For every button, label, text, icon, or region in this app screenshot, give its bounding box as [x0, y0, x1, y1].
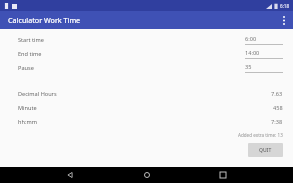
button[interactable]: Home — [137, 167, 157, 183]
staticText: 458 — [273, 104, 283, 112]
button[interactable]: Start time — [0, 33, 293, 47]
button[interactable]: Decimal Hours — [0, 87, 293, 101]
staticText: Minute — [18, 104, 37, 112]
staticText: 7.63 — [271, 90, 283, 98]
staticText: Start time — [18, 36, 44, 44]
staticText: 7:38 — [271, 118, 283, 126]
button[interactable]: hh:mm — [0, 115, 293, 129]
staticText: Pause — [18, 64, 34, 72]
staticText: End time — [18, 50, 42, 58]
button[interactable]: Minute — [0, 101, 293, 115]
button[interactable]: Recent apps — [213, 167, 233, 183]
button[interactable]: Back — [60, 167, 80, 183]
staticText: Added extra time: 13 — [238, 132, 283, 138]
staticText: 6:18 — [280, 3, 290, 9]
button[interactable]: End time — [0, 47, 293, 61]
staticText: QUIT — [259, 147, 272, 154]
staticText: Decimal Hours — [18, 90, 57, 98]
staticText: 35 — [245, 63, 252, 71]
staticText: hh:mm — [18, 118, 37, 126]
button[interactable]: QUIT — [248, 143, 283, 157]
staticText: 14:00 — [245, 49, 260, 57]
staticText: Calculator Work Time — [8, 15, 81, 25]
button[interactable]: Pause — [0, 61, 293, 75]
button[interactable]: More options — [275, 11, 293, 29]
staticText: 6:00 — [245, 35, 257, 43]
